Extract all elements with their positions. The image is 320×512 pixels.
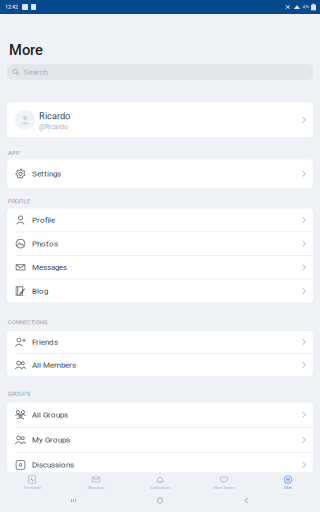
staticText: GROUPS <box>8 391 30 397</box>
button[interactable]: Search <box>7 64 313 80</box>
button[interactable]: Notifications <box>128 472 192 489</box>
staticText: Notifications <box>149 485 170 490</box>
button[interactable]: More <box>256 472 320 489</box>
staticText: Discussions <box>32 460 74 470</box>
staticText: More <box>284 485 292 490</box>
button[interactable]: Ricardo <box>7 102 313 137</box>
button[interactable]: Profile <box>7 208 313 231</box>
button[interactable]: Home <box>147 490 173 512</box>
button[interactable]: Messages <box>7 256 313 279</box>
staticText: All Members <box>32 360 76 370</box>
staticText: Photos <box>32 239 58 248</box>
button[interactable]: Newsfeed <box>0 472 64 489</box>
staticText: My Groups <box>32 435 70 444</box>
button[interactable]: Settings <box>7 159 313 188</box>
staticText: Friends <box>32 337 58 347</box>
staticText: Messages <box>32 263 67 272</box>
staticText: Messages <box>87 485 104 490</box>
staticText: 43% <box>302 5 309 9</box>
staticText: Settings <box>32 169 61 178</box>
button[interactable]: Photos <box>7 232 313 255</box>
staticText: Search <box>23 67 47 77</box>
button[interactable]: All Members <box>7 354 313 376</box>
button[interactable]: All Groups <box>7 402 313 427</box>
staticText: More <box>9 41 43 58</box>
staticText: 12:42 <box>5 4 18 10</box>
button[interactable]: Discussions <box>7 453 313 477</box>
staticText: CONNECTIONS <box>8 319 47 326</box>
staticText: PROFILE <box>8 198 30 204</box>
staticText: APP <box>8 150 20 156</box>
staticText: Ricardo <box>39 111 70 121</box>
staticText: Mood Tracker <box>213 485 235 490</box>
staticText: Newsfeed <box>23 485 40 490</box>
staticText: Profile <box>32 215 55 225</box>
button[interactable]: Blog <box>7 279 313 302</box>
button[interactable]: Back <box>233 490 259 512</box>
button[interactable]: My Groups <box>7 428 313 452</box>
button[interactable]: Recent apps <box>60 490 86 512</box>
button[interactable]: Messages <box>64 472 128 489</box>
staticText: Blog <box>32 286 48 296</box>
staticText: @Ricardo <box>39 123 68 131</box>
button[interactable]: Mood Tracker <box>192 472 256 489</box>
button[interactable]: Friends <box>7 331 313 353</box>
staticText: All Groups <box>32 410 68 419</box>
